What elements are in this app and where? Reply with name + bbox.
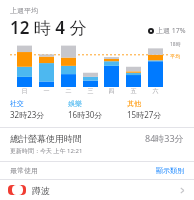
staticText: 二 [61,87,76,95]
staticText: 蹲波 [32,185,50,195]
button[interactable]: 娛樂 [68,99,127,120]
button[interactable]: 蹲波 [0,180,194,200]
button[interactable] [39,41,54,87]
button[interactable] [61,41,76,87]
staticText: 一 [39,87,54,95]
staticText: 總計螢幕使用時間 [10,133,82,144]
staticText: 上週平均 [10,6,38,15]
staticText: 15時27分 [127,109,162,120]
staticText: 五 [126,87,141,95]
staticText: 其他 [127,99,141,108]
staticText: 12 時 4 分 [10,16,87,39]
other: Open app detail [179,187,186,194]
button[interactable]: 其他 [127,99,186,120]
staticText: 最常使用 [10,166,38,175]
button[interactable] [126,41,141,87]
staticText: 32時23分 [10,109,45,120]
staticText: 16時30分 [68,109,103,120]
button[interactable]: 顯示類別 [156,166,184,175]
staticText: 娛樂 [68,99,82,108]
staticText: 三 [83,87,98,95]
button[interactable]: 社交 [10,99,68,120]
button[interactable]: 總計螢幕使用時間 [0,128,194,161]
staticText: 平均 [170,53,180,59]
staticText: 上週 17% [156,26,186,36]
button[interactable] [83,41,98,87]
staticText: 社交 [10,99,24,108]
staticText: 顯示類別 [156,166,184,175]
button[interactable] [17,41,32,87]
staticText: 六 [148,87,163,95]
button[interactable] [104,41,119,87]
staticText: 更新時間：今天 上午 12:21 [10,147,83,155]
staticText: 日 [17,87,32,95]
staticText: 四 [104,87,119,95]
button[interactable] [148,41,163,87]
staticText: 18時 [170,41,181,48]
staticText: 84時33分 [145,132,184,144]
